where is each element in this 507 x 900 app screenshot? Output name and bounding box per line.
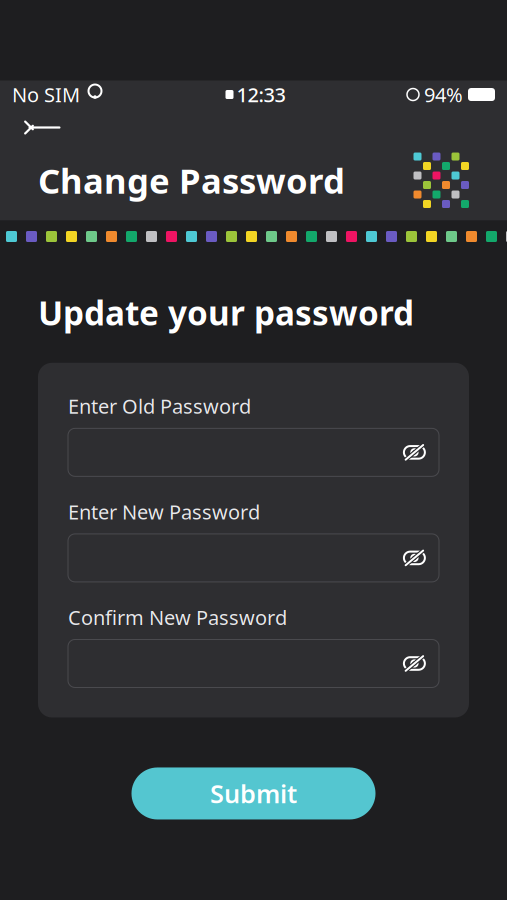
button[interactable]: Show Enter New Password (68, 534, 439, 582)
staticText: Change Password (38, 157, 345, 203)
staticText: Enter New Password (68, 498, 260, 525)
staticText: 94% (424, 81, 463, 108)
staticText: Enter Old Password (68, 393, 251, 419)
staticText: Confirm New Password (68, 604, 287, 630)
staticText: Update your password (38, 290, 414, 335)
button[interactable]: Show Enter Old Password (68, 428, 439, 476)
button[interactable]: App logo (413, 152, 469, 208)
button[interactable]: Submit (131, 767, 375, 819)
staticText: 12:33 (236, 81, 285, 108)
staticText: Submit (210, 777, 297, 810)
button[interactable]: Back (14, 112, 70, 142)
button[interactable]: Show Confirm New Password (68, 639, 439, 687)
staticText: No SIM (12, 81, 80, 108)
